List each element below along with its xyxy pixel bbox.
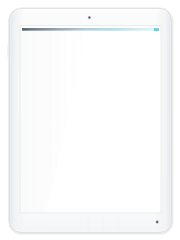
button[interactable]: White tablet device with blank screen — [0, 0, 180, 240]
